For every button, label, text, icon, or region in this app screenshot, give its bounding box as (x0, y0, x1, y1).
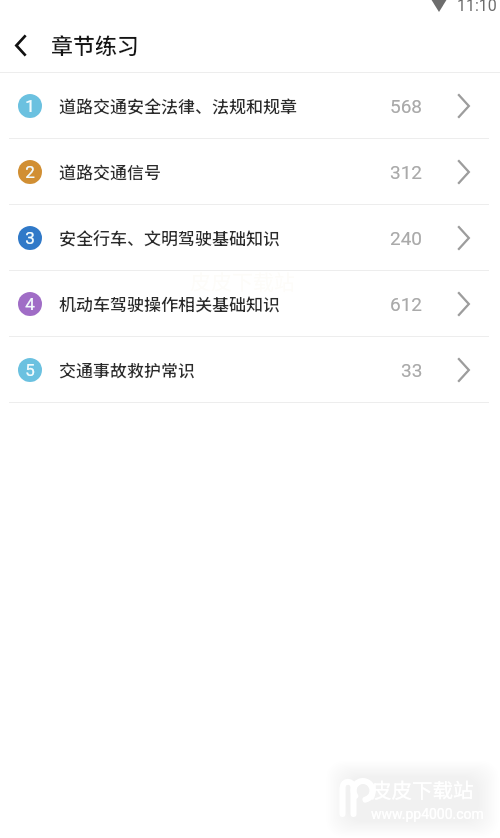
staticText: 11:10 (457, 0, 497, 15)
staticText: 道路交通安全法律、法规和规章 (59, 93, 297, 118)
staticText: 道路交通信号 (59, 159, 161, 184)
staticText: 皮皮下载站 (371, 774, 474, 804)
staticText: 312 (390, 161, 423, 183)
staticText: 2 (25, 162, 35, 182)
button[interactable]: Back (0, 21, 42, 72)
staticText: 568 (390, 95, 423, 117)
staticText: 4 (25, 294, 35, 314)
staticText: 机动车驾驶操作相关基础知识 (59, 291, 280, 316)
staticText: 33 (401, 359, 423, 381)
staticText: 3 (25, 228, 35, 248)
button[interactable]: 5 (0, 337, 500, 402)
staticText: 皮皮下载站 (190, 266, 295, 296)
button[interactable]: 1 (0, 73, 500, 138)
staticText: 章节练习 (51, 28, 140, 60)
button[interactable]: 4 (0, 271, 500, 336)
button[interactable]: 3 (0, 205, 500, 270)
staticText: 1 (25, 96, 35, 116)
staticText: 240 (390, 227, 423, 249)
staticText: 612 (390, 293, 423, 315)
staticText: 交通事故救护常识 (59, 357, 195, 382)
button[interactable]: 2 (0, 139, 500, 204)
staticText: 5 (25, 360, 35, 380)
staticText: 安全行车、文明驾驶基础知识 (59, 225, 280, 250)
staticText: www.pp4000.com (371, 806, 484, 822)
